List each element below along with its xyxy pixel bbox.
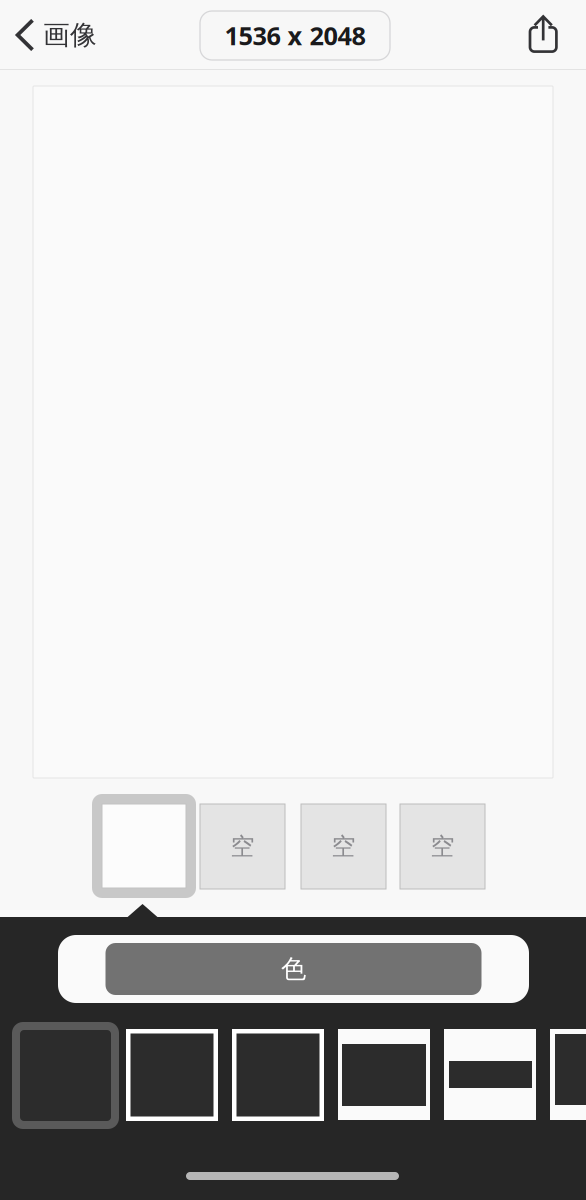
button[interactable]: Side layout: [550, 1029, 586, 1120]
staticText: 空: [430, 832, 454, 861]
button[interactable]: Empty page: [301, 804, 386, 889]
button[interactable]: Polaroid layout: [338, 1029, 430, 1120]
button[interactable]: Empty page: [200, 804, 285, 889]
button[interactable]: Empty page: [400, 804, 485, 889]
button[interactable]: Thin border layout: [232, 1029, 324, 1121]
staticText: 1536 x 2048: [224, 19, 365, 52]
button[interactable]: Page 1, selected: [92, 794, 196, 898]
button[interactable]: Share: [529, 15, 557, 53]
button[interactable]: Full-bleed layout, selected: [12, 1022, 119, 1129]
button[interactable]: 1536 x 2048: [200, 11, 390, 60]
button[interactable]: 画像: [15, 17, 97, 53]
button[interactable]: Thin border layout: [126, 1029, 218, 1121]
button[interactable]: Band layout: [444, 1029, 536, 1120]
staticText: 空: [230, 832, 254, 861]
staticText: 画像: [43, 19, 97, 51]
staticText: 色: [281, 953, 306, 984]
staticText: 空: [331, 832, 355, 861]
button[interactable]: 色: [58, 935, 529, 1003]
